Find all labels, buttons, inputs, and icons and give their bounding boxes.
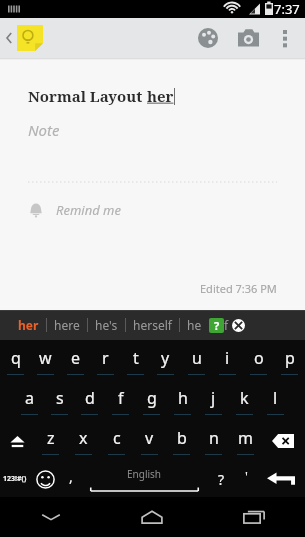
staticText: her: [147, 86, 174, 106]
staticText: z: [47, 427, 55, 449]
staticText: Edited 7:36 PM: [200, 281, 277, 296]
staticText: q: [11, 347, 21, 369]
staticText: he: [187, 317, 202, 333]
button[interactable]: j: [198, 381, 229, 421]
staticText: m: [238, 427, 253, 449]
button[interactable]: w: [30, 340, 60, 381]
staticText: 123!#(): [3, 474, 27, 484]
staticText: g: [147, 387, 157, 409]
button[interactable]: Backspace: [261, 421, 305, 461]
staticText: r: [102, 347, 109, 369]
staticText: h: [178, 387, 188, 409]
staticText: English: [127, 467, 162, 481]
button[interactable]: s: [44, 381, 74, 421]
button[interactable]: Hide keyboard: [0, 497, 101, 537]
button[interactable]: Enter: [257, 461, 305, 497]
button[interactable]: 123!#(): [0, 461, 30, 497]
staticText: b: [177, 427, 187, 449]
staticText: her: [18, 317, 39, 333]
staticText: x: [79, 427, 88, 449]
staticText: ?: [214, 318, 220, 333]
staticText: u: [192, 347, 202, 369]
button[interactable]: o: [243, 340, 274, 381]
staticText: y: [161, 347, 170, 369]
button[interactable]: z: [34, 421, 67, 461]
button[interactable]: n: [197, 421, 229, 461]
staticText: Remind me: [56, 201, 121, 219]
button[interactable]: k: [229, 381, 260, 421]
button[interactable]: g: [136, 381, 167, 421]
button[interactable]: Help: [209, 318, 224, 333]
button[interactable]: ?: [207, 461, 235, 497]
button[interactable]: i: [212, 340, 243, 381]
button[interactable]: Space: [82, 461, 207, 497]
staticText: c: [113, 427, 121, 449]
staticText: j: [211, 387, 216, 409]
button[interactable]: herself: [126, 313, 179, 337]
button[interactable]: Emoji: [30, 461, 60, 497]
button[interactable]: Shift: [0, 421, 34, 461]
button[interactable]: u: [181, 340, 212, 381]
button[interactable]: b: [165, 421, 197, 461]
button[interactable]: q: [0, 340, 30, 381]
button[interactable]: Back: [0, 25, 47, 51]
button[interactable]: Camera: [228, 18, 268, 58]
staticText: he's: [95, 317, 118, 333]
button[interactable]: Dismiss: [229, 316, 247, 334]
button[interactable]: he's: [88, 313, 125, 337]
button[interactable]: m: [229, 421, 261, 461]
staticText: o: [254, 347, 264, 369]
staticText: a: [25, 387, 34, 409]
button[interactable]: a: [14, 381, 44, 421]
staticText: v: [145, 427, 154, 449]
other: Back: [4, 29, 14, 47]
staticText: ': [245, 467, 248, 485]
button[interactable]: Home: [101, 497, 203, 537]
button[interactable]: l: [260, 381, 291, 421]
staticText: n: [209, 427, 219, 449]
staticText: s: [56, 387, 64, 409]
button[interactable]: her: [11, 313, 46, 337]
staticText: f: [118, 387, 124, 409]
staticText: Normal Layout: [28, 86, 147, 106]
staticText: 7:37: [274, 0, 300, 18]
button[interactable]: More options: [268, 21, 302, 55]
button[interactable]: he: [180, 313, 209, 337]
button[interactable]: h: [167, 381, 198, 421]
button[interactable]: p: [274, 340, 305, 381]
staticText: d: [85, 387, 95, 409]
button[interactable]: x: [67, 421, 100, 461]
button[interactable]: ': [235, 461, 257, 497]
button[interactable]: y: [150, 340, 181, 381]
staticText: i: [225, 347, 230, 369]
button[interactable]: f: [105, 381, 136, 421]
staticText: f: [224, 317, 229, 333]
button[interactable]: e: [60, 340, 90, 381]
button[interactable]: v: [133, 421, 165, 461]
button[interactable]: Note: [28, 120, 60, 140]
staticText: k: [240, 387, 249, 409]
staticText: herself: [133, 317, 172, 333]
button[interactable]: ,: [60, 461, 82, 497]
button[interactable]: Recent apps: [203, 497, 305, 537]
staticText: l: [273, 387, 278, 409]
staticText: w: [39, 347, 52, 369]
button[interactable]: r: [90, 340, 120, 381]
button[interactable]: Remind me: [28, 201, 121, 219]
staticText: ?: [218, 470, 225, 489]
staticText: ,: [69, 467, 73, 486]
staticText: t: [133, 347, 139, 369]
staticText: e: [71, 347, 81, 369]
button[interactable]: d: [74, 381, 105, 421]
staticText: p: [285, 347, 295, 369]
button[interactable]: Color palette: [188, 18, 228, 58]
button[interactable]: t: [120, 340, 150, 381]
button[interactable]: here: [47, 313, 87, 337]
staticText: here: [54, 317, 80, 333]
button[interactable]: c: [100, 421, 133, 461]
